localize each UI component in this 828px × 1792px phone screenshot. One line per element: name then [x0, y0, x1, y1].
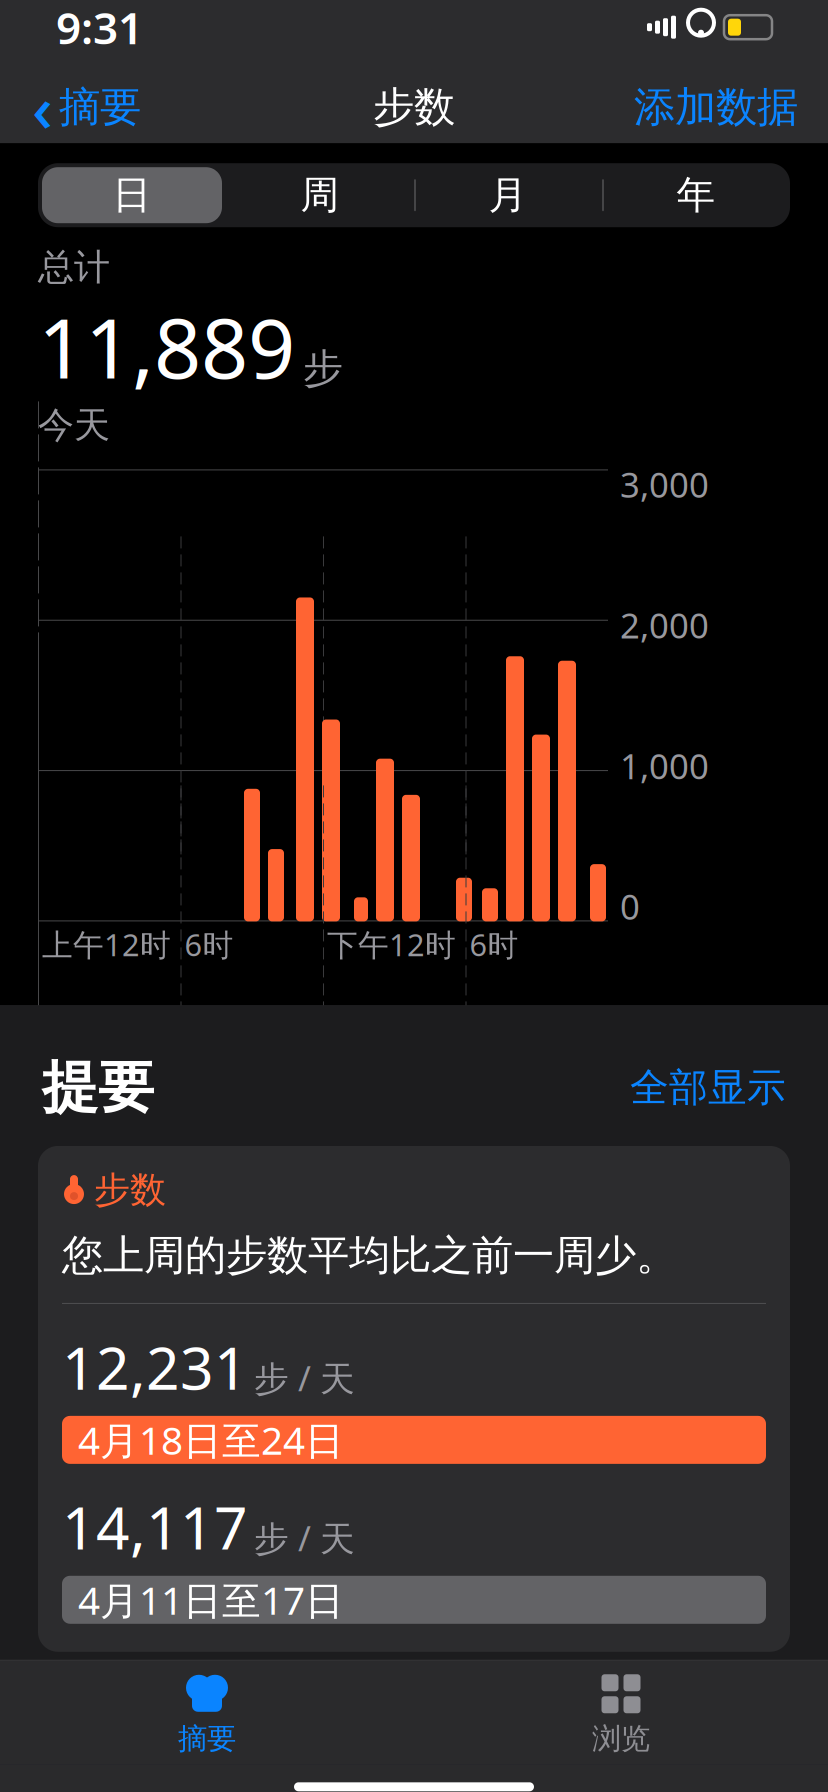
button[interactable]: 全部显示	[630, 1064, 786, 1111]
staticText: ‹	[32, 65, 53, 150]
staticText: 4月18日至24日	[78, 1414, 344, 1465]
button[interactable]: 年	[602, 163, 790, 227]
staticText: 14,117	[62, 1488, 248, 1566]
staticText: 提要	[42, 1053, 154, 1122]
button[interactable]: 月	[414, 163, 602, 227]
staticText: 2,000	[620, 602, 709, 648]
staticText: 摘要	[59, 82, 141, 133]
staticText: 步	[303, 344, 343, 393]
staticText: 步数	[94, 1168, 166, 1212]
staticText: 4月11日至17日	[78, 1574, 344, 1625]
staticText: 步数	[373, 82, 455, 133]
staticText: 月	[488, 171, 527, 219]
staticText: 12,231	[62, 1328, 248, 1406]
button[interactable]: 周	[226, 163, 414, 227]
staticText: 1,000	[620, 743, 709, 789]
button[interactable]: 添加数据	[626, 76, 806, 139]
staticText: 总计	[38, 245, 110, 289]
button[interactable]: 日	[38, 163, 226, 227]
staticText: 0	[620, 883, 640, 929]
staticText: 6时	[469, 924, 518, 965]
button[interactable]: ‹	[22, 59, 151, 156]
staticText: 下午12时	[327, 924, 456, 965]
button[interactable]: 4月18日至24日	[62, 1416, 766, 1464]
staticText: 11,889	[38, 291, 295, 401]
staticText: 6时	[184, 924, 233, 965]
staticText: 日	[112, 171, 151, 219]
staticText: 摘要	[178, 1721, 236, 1757]
staticText: 步 / 天	[254, 1355, 355, 1401]
staticText: 全部显示	[630, 1064, 786, 1111]
staticText: 年	[676, 171, 715, 219]
staticText: 浏览	[592, 1721, 650, 1757]
staticText: 您上周的步数平均比之前一周少。	[62, 1230, 677, 1281]
button[interactable]: 4月11日至17日	[62, 1576, 766, 1624]
button[interactable]: 浏览	[414, 1661, 828, 1765]
staticText: 周	[300, 171, 339, 219]
staticText: 3,000	[620, 461, 709, 507]
staticText: 9:31	[56, 0, 143, 56]
staticText: 今天	[38, 403, 110, 447]
staticText: 上午12时	[42, 924, 171, 965]
staticText: 步 / 天	[254, 1515, 355, 1561]
staticText: 添加数据	[634, 82, 798, 133]
button[interactable]: 摘要	[0, 1661, 414, 1765]
